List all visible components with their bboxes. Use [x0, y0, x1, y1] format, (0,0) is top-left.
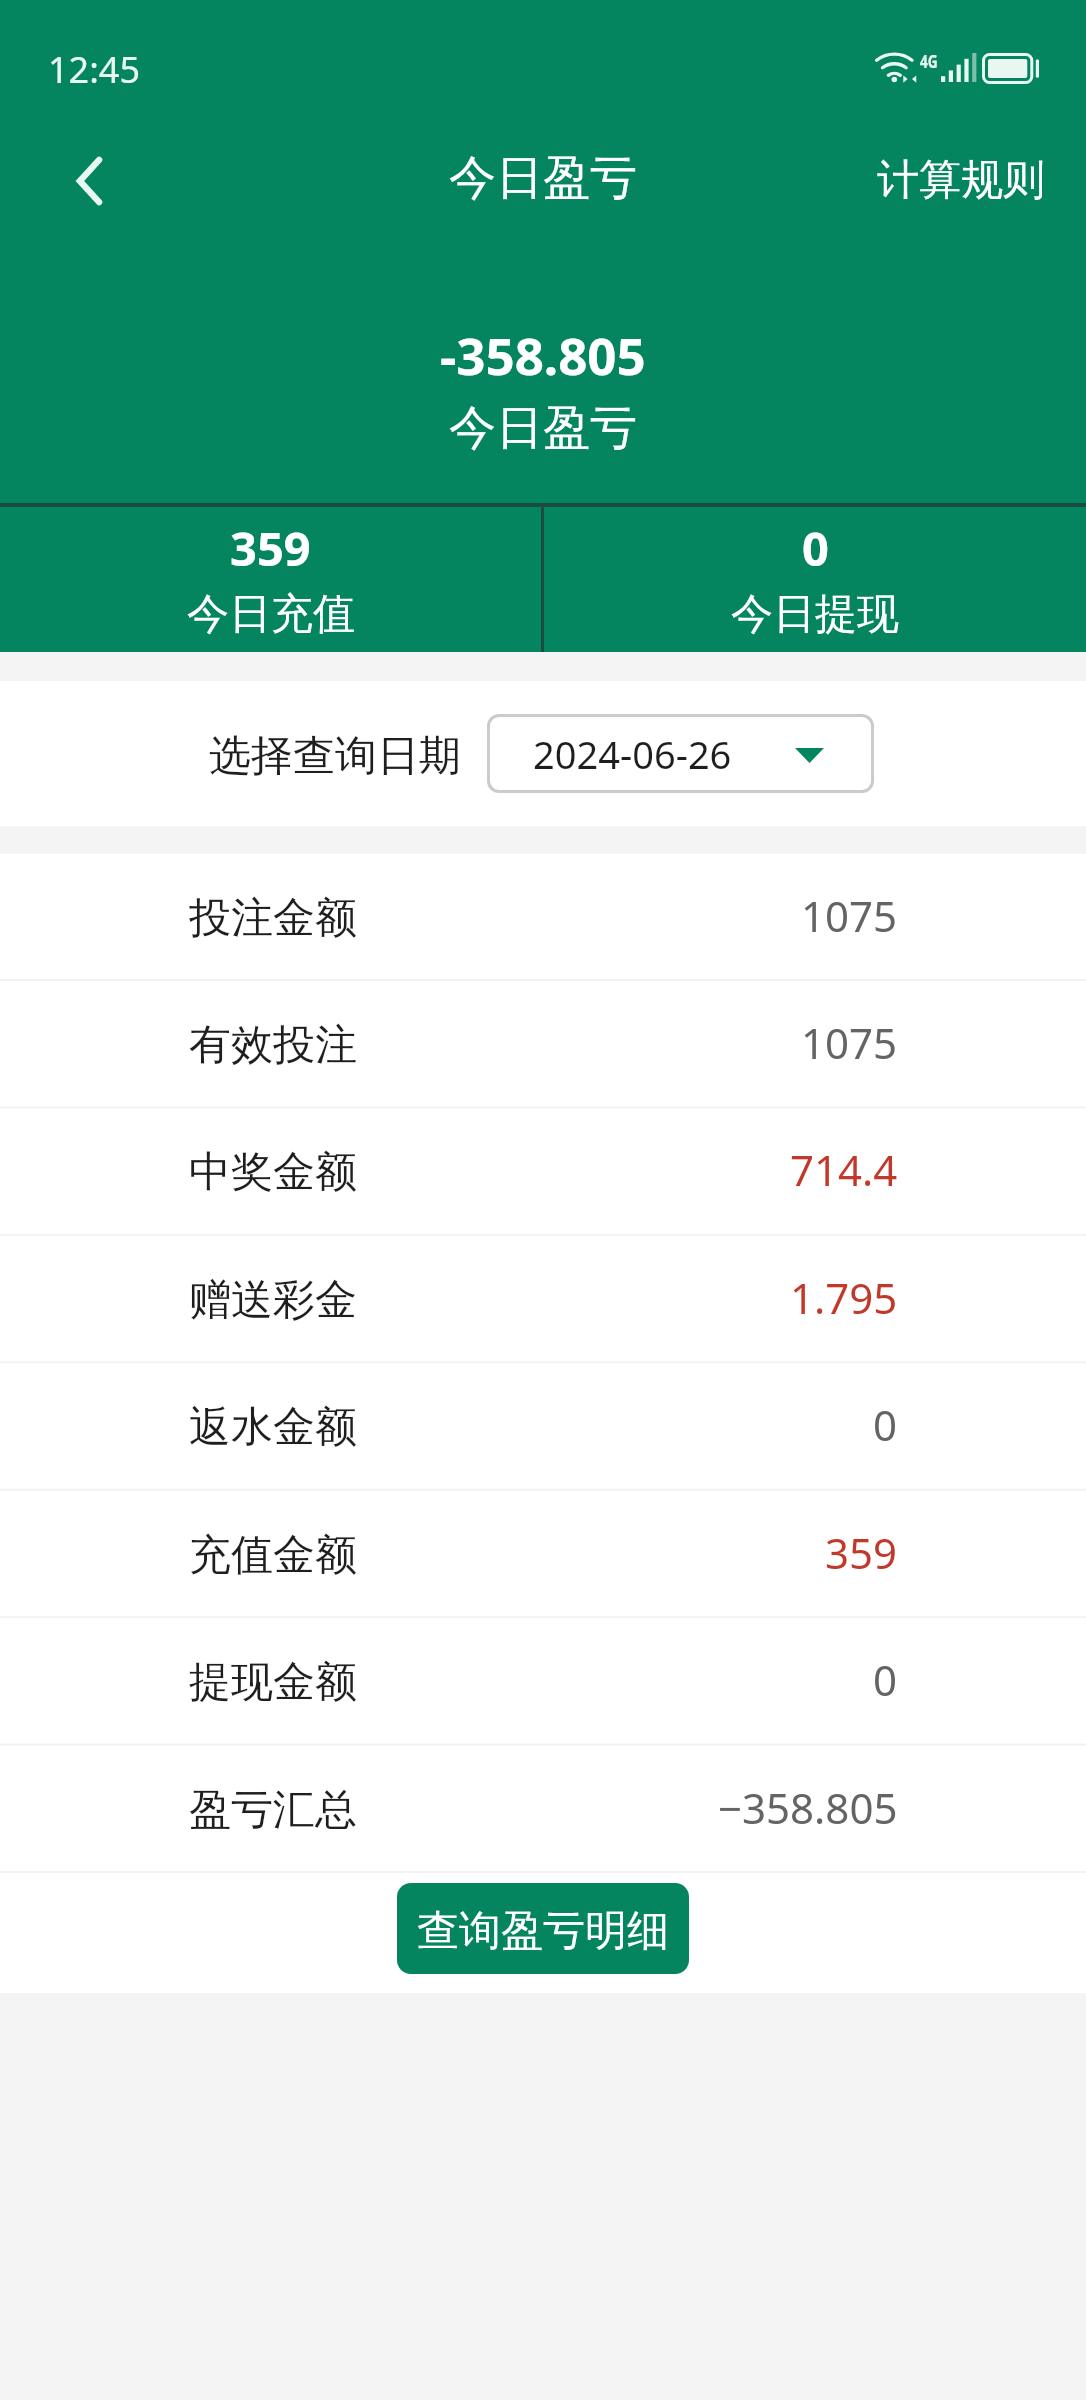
staticText: 今日提现 [731, 588, 899, 641]
staticText: 今日盈亏 [449, 399, 637, 458]
staticText: 有效投注 [189, 1019, 357, 1072]
staticText: 赠送彩金 [189, 1274, 357, 1327]
staticText: 0 [802, 516, 829, 580]
button[interactable]: 投注金额 [0, 852, 1086, 979]
button[interactable]: 0 [544, 507, 1086, 652]
button[interactable]: 计算规则 [833, 136, 1086, 225]
button[interactable]: 359 [0, 507, 541, 652]
button[interactable]: 中奖金额 [0, 1106, 1086, 1233]
staticText: 0 [873, 1651, 898, 1708]
staticText: 中奖金额 [189, 1146, 357, 1199]
staticText: 1.795 [790, 1269, 898, 1326]
staticText: 4G [920, 49, 938, 74]
staticText: 2024-06-26 [533, 728, 732, 780]
button[interactable]: 充值金额 [0, 1489, 1086, 1616]
staticText: 12:45 [48, 45, 141, 94]
staticText: 1075 [801, 1014, 898, 1071]
staticText: 选择查询日期 [209, 730, 461, 783]
staticText: 充值金额 [189, 1529, 357, 1582]
staticText: 投注金额 [189, 892, 357, 945]
staticText: 返水金额 [189, 1401, 357, 1454]
staticText: 359 [230, 516, 311, 580]
button[interactable]: 盈亏汇总 [0, 1744, 1086, 1871]
button[interactable]: 有效投注 [0, 979, 1086, 1106]
button[interactable]: 2024-06-26 [487, 714, 874, 793]
button[interactable]: 查询盈亏明细 [397, 1883, 689, 1974]
staticText: 计算规则 [877, 154, 1045, 207]
staticText: -358.805 [440, 320, 646, 389]
staticText: 0 [873, 1396, 898, 1453]
staticText: 查询盈亏明细 [417, 1905, 669, 1958]
staticText: 714.4 [790, 1141, 898, 1198]
button[interactable]: Back [35, 127, 143, 235]
staticText: 今日充值 [187, 588, 355, 641]
staticText: −358.805 [718, 1779, 898, 1836]
staticText: 今日盈亏 [449, 149, 637, 208]
button[interactable]: 赠送彩金 [0, 1234, 1086, 1361]
staticText: 359 [825, 1524, 898, 1581]
staticText: 盈亏汇总 [189, 1784, 357, 1837]
button[interactable]: 返水金额 [0, 1361, 1086, 1488]
staticText: 提现金额 [189, 1656, 357, 1709]
staticText: 1075 [801, 887, 898, 944]
button[interactable]: 提现金额 [0, 1616, 1086, 1743]
